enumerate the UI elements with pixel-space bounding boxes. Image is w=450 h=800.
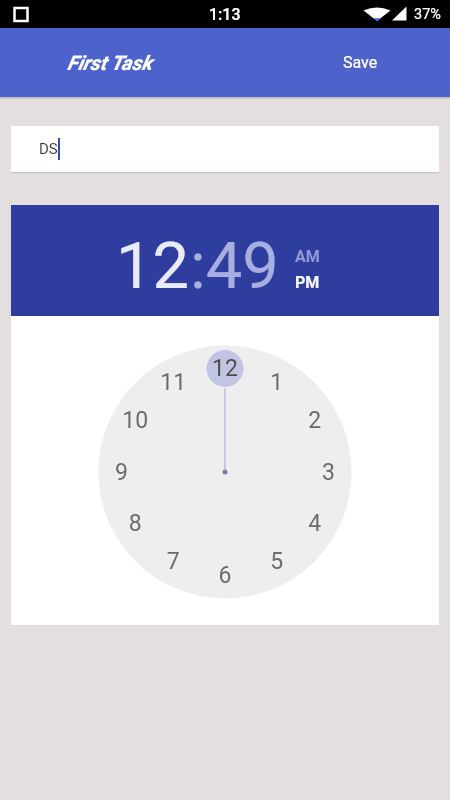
button[interactable]: AM bbox=[295, 247, 320, 266]
button[interactable]: DS bbox=[11, 126, 439, 172]
staticText: First Task bbox=[67, 51, 152, 74]
staticText: 37% bbox=[414, 6, 441, 23]
button[interactable]: PM bbox=[295, 273, 320, 292]
button[interactable]: :49 bbox=[190, 228, 279, 304]
button[interactable]: Save bbox=[327, 37, 394, 88]
staticText: DS bbox=[39, 140, 58, 158]
staticText: 1:13 bbox=[209, 5, 241, 24]
button[interactable]: 12 bbox=[116, 228, 190, 304]
button[interactable] bbox=[11, 316, 439, 625]
staticText: Save bbox=[343, 53, 378, 72]
